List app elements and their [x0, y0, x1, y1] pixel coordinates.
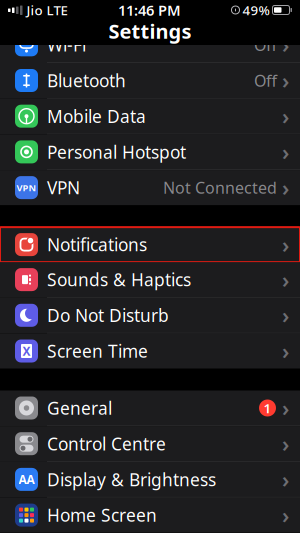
button[interactable]: Personal Hotspot	[0, 134, 300, 170]
button[interactable]: Bluetooth	[0, 63, 300, 99]
staticText: Settings	[108, 18, 191, 44]
staticText: ›	[282, 102, 289, 130]
staticText: Off	[254, 34, 277, 55]
staticText: Do Not Disturb	[47, 304, 169, 327]
staticText: Screen Time	[47, 339, 148, 362]
staticText: ›	[282, 230, 289, 259]
staticText: Mobile Data	[47, 105, 146, 128]
staticText: Display & Brightness	[47, 468, 216, 491]
button[interactable]: Mobile Data	[0, 99, 300, 134]
button[interactable]: Do Not Disturb	[0, 298, 300, 333]
staticText: Off	[254, 70, 277, 91]
staticText: AA	[18, 471, 34, 487]
staticText: VPN	[47, 176, 80, 199]
staticText: ›	[282, 501, 289, 529]
staticText: 1	[263, 399, 271, 417]
staticText: Wi-Fi	[47, 33, 86, 56]
button[interactable]: Notifications	[0, 227, 300, 262]
button[interactable]: Sounds & Haptics	[0, 262, 300, 298]
staticText: ›	[282, 465, 289, 493]
button[interactable]: General	[0, 390, 300, 426]
staticText: ›	[282, 138, 289, 166]
staticText: LTE	[46, 1, 67, 19]
staticText: ›	[282, 265, 289, 294]
staticText: Not Connected	[163, 177, 277, 198]
staticText: ›	[282, 66, 289, 95]
staticText: ›	[282, 301, 289, 329]
staticText: Control Centre	[47, 432, 166, 455]
staticText: Sounds & Haptics	[47, 268, 191, 291]
staticText: Home Screen	[47, 504, 157, 527]
staticText: X	[22, 343, 30, 359]
staticText: Jio	[26, 1, 42, 19]
staticText: Bluetooth	[47, 69, 126, 92]
staticText: 11:46 PM	[118, 0, 181, 20]
staticText: VPN	[16, 181, 36, 194]
staticText: ›	[282, 337, 289, 365]
button[interactable]: VPN	[0, 170, 300, 205]
button[interactable]: AA	[0, 462, 300, 498]
button[interactable]: Home Screen	[0, 498, 300, 533]
staticText: 49%	[242, 1, 269, 19]
staticText: ›	[282, 394, 289, 422]
staticText: Notifications	[47, 233, 147, 256]
staticText: ›	[282, 173, 289, 202]
staticText: General	[47, 396, 112, 419]
staticText: ›	[282, 31, 289, 59]
staticText: ›	[282, 429, 289, 458]
button[interactable]: Wi-Fi	[0, 27, 300, 63]
button[interactable]: X	[0, 333, 300, 368]
staticText: Personal Hotspot	[47, 140, 186, 163]
button[interactable]: Control Centre	[0, 426, 300, 462]
